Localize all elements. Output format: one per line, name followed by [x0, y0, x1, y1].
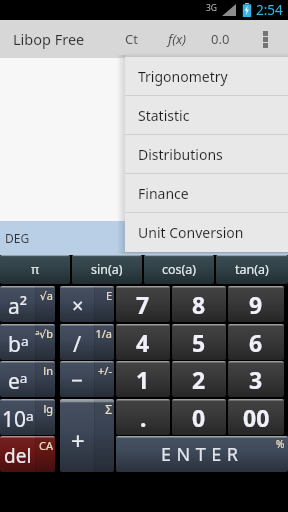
staticText: √a — [13, 288, 53, 303]
staticText: Σ — [72, 401, 112, 417]
button[interactable]: ENTER — [116, 436, 288, 472]
button[interactable]: eᵃ — [0, 361, 55, 397]
staticText: 2 — [192, 364, 206, 395]
staticText: eᵃ — [8, 367, 28, 396]
button[interactable]: + — [60, 399, 114, 472]
staticText: Ct — [125, 30, 138, 48]
button[interactable]: 9 — [228, 286, 284, 322]
staticText: 0.0 — [211, 30, 230, 48]
button[interactable]: Statistic — [125, 96, 288, 135]
staticText: 1 — [136, 364, 150, 395]
button[interactable]: More options — [251, 20, 280, 58]
staticText: 7 — [136, 289, 150, 320]
button[interactable]: 6 — [228, 324, 284, 360]
staticText: ln — [13, 363, 53, 378]
button[interactable]: a² — [0, 286, 55, 322]
staticText: 00 — [243, 402, 270, 433]
staticText: − — [71, 366, 84, 395]
staticText: 4 — [136, 327, 150, 358]
button[interactable]: . — [116, 399, 170, 435]
button[interactable]: × — [60, 286, 114, 322]
staticText: del — [4, 443, 32, 469]
staticText: Distributions — [138, 145, 223, 164]
button[interactable]: − — [60, 361, 114, 397]
button[interactable]: Unit Conversion — [125, 213, 288, 252]
staticText: + — [71, 424, 85, 457]
button[interactable]: 3 — [228, 361, 284, 397]
staticText: % — [276, 437, 285, 451]
staticText: sin(a) — [91, 261, 123, 278]
staticText: . — [140, 402, 147, 433]
button[interactable]: 00 — [228, 399, 284, 435]
button[interactable]: bᵃ — [0, 324, 55, 360]
staticText: DEG — [5, 230, 30, 246]
staticText: π — [31, 261, 40, 278]
button[interactable]: sin(a) — [72, 255, 142, 284]
button[interactable]: 0 — [172, 399, 226, 435]
staticText: bᵃ — [8, 330, 29, 359]
staticText: × — [72, 292, 84, 319]
staticText: 10ᵃ — [2, 405, 34, 434]
staticText: Unit Conversion — [138, 223, 244, 242]
button[interactable]: 0.0 — [204, 20, 237, 58]
staticText: 1/a — [72, 326, 112, 341]
button[interactable]: 8 — [172, 286, 226, 322]
staticText: ᵃ√b — [13, 326, 53, 341]
staticText: f(x) — [168, 30, 186, 48]
staticText: 0 — [192, 402, 206, 433]
staticText: ENTER — [161, 442, 244, 467]
staticText: +/- — [72, 363, 112, 378]
staticText: lg — [13, 401, 53, 416]
button[interactable]: 4 — [116, 324, 170, 360]
staticText: 2:54 — [256, 1, 283, 19]
button[interactable]: f(x) — [161, 20, 193, 58]
staticText: E — [72, 288, 112, 303]
button[interactable]: 5 — [172, 324, 226, 360]
button[interactable]: Finance — [125, 174, 288, 213]
button[interactable]: 2 — [172, 361, 226, 397]
staticText: Statistic — [138, 106, 190, 125]
staticText: 9 — [249, 289, 263, 320]
staticText: tan(a) — [235, 261, 269, 278]
staticText: Finance — [138, 184, 189, 203]
button[interactable]: 10ᵃ — [0, 399, 55, 435]
staticText: Libop Free — [13, 29, 85, 49]
button[interactable]: Distributions — [125, 135, 288, 174]
button[interactable]: 1 — [116, 361, 170, 397]
staticText: CA — [13, 438, 53, 453]
button[interactable]: 7 — [116, 286, 170, 322]
staticText: cos(a) — [162, 261, 197, 278]
staticText: 8 — [192, 289, 206, 320]
staticText: a² — [8, 292, 28, 321]
staticText: 3 — [249, 364, 263, 395]
staticText: 6 — [249, 327, 263, 358]
staticText: Trigonometry — [138, 67, 228, 86]
button[interactable]: / — [60, 324, 114, 360]
button[interactable]: del — [0, 436, 55, 472]
button[interactable]: Ct — [117, 20, 146, 58]
button[interactable]: π — [0, 255, 70, 284]
staticText: 3G — [206, 2, 218, 14]
button[interactable]: Trigonometry — [125, 57, 288, 96]
button[interactable]: tan(a) — [216, 255, 288, 284]
staticText: / — [73, 328, 82, 358]
staticText: 5 — [192, 327, 206, 358]
button[interactable]: cos(a) — [144, 255, 214, 284]
